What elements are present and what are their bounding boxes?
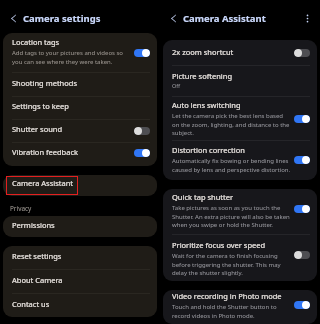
button[interactable]: 2x zoom shortcut [163, 40, 317, 65]
staticText: Video recording in Photo mode [172, 291, 282, 301]
staticText: Camera Assistant [12, 178, 74, 188]
staticText: Location tags [12, 37, 60, 47]
staticText: Off [172, 82, 181, 89]
button[interactable]: Contact us [3, 294, 157, 317]
staticText: Let the camera pick the best lens based … [172, 112, 290, 136]
button[interactable]: Vibration feedback [3, 143, 157, 166]
button[interactable]: On [294, 156, 310, 164]
button[interactable]: Back [167, 12, 180, 25]
staticText: Picture softening [172, 71, 233, 81]
button[interactable]: Reset settings [3, 246, 157, 269]
button[interactable]: Picture softening [163, 66, 317, 96]
button[interactable]: On [294, 115, 310, 123]
staticText: Vibration feedback [12, 147, 79, 157]
staticText: Shutter sound [12, 124, 63, 134]
staticText: Add tags to your pictures and videos so … [12, 49, 123, 65]
staticText: Automatically fix bowing or bending line… [172, 157, 291, 173]
button[interactable]: Settings to keep [3, 97, 157, 119]
staticText: Quick tap shutter [172, 192, 234, 202]
button[interactable]: Distortion correction [163, 141, 317, 180]
button[interactable]: Shutter sound [3, 120, 157, 142]
button[interactable]: Off [294, 251, 310, 259]
button[interactable]: Video recording in Photo mode [163, 290, 317, 324]
button[interactable]: More options [301, 12, 314, 25]
button[interactable]: On [134, 49, 150, 57]
button[interactable]: Camera Assistant [3, 175, 157, 196]
staticText: Camera Assistant [183, 12, 266, 25]
staticText: Prioritize focus over speed [172, 240, 266, 250]
staticText: Permissions [12, 220, 55, 230]
staticText: Wait for the camera to finish focusing b… [172, 252, 281, 276]
button[interactable]: Quick tap shutter [163, 189, 317, 234]
staticText: Privacy [10, 204, 32, 213]
staticText: Auto lens switching [172, 100, 241, 110]
staticText: About Camera [12, 275, 63, 285]
button[interactable]: On [294, 301, 310, 309]
button[interactable]: Auto lens switching [163, 97, 317, 140]
button[interactable]: Shooting methods [3, 73, 157, 96]
button[interactable]: Off [134, 127, 150, 135]
button[interactable]: Prioritize focus over speed [163, 235, 317, 281]
staticText: Shooting methods [12, 78, 77, 88]
staticText: Take pictures as soon as you touch the S… [172, 204, 290, 228]
staticText: Reset settings [12, 251, 62, 261]
staticText: 2x zoom shortcut [172, 47, 234, 57]
button[interactable]: On [134, 149, 150, 157]
button[interactable]: Permissions [3, 216, 157, 237]
button[interactable]: Off [294, 49, 310, 57]
staticText: Settings to keep [12, 101, 69, 111]
button[interactable]: Back [7, 12, 20, 25]
button[interactable]: Location tags [3, 33, 157, 72]
button[interactable]: On [294, 205, 310, 213]
staticText: Distortion correction [172, 145, 245, 155]
staticText: Camera settings [23, 12, 101, 25]
button[interactable]: About Camera [3, 270, 157, 293]
staticText: Contact us [12, 299, 50, 309]
staticText: Touch and hold the Shutter button to rec… [172, 303, 277, 319]
